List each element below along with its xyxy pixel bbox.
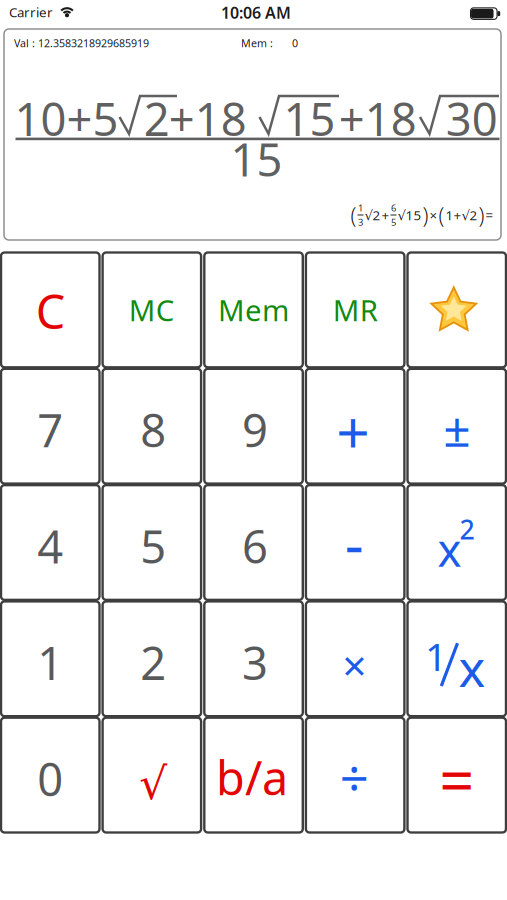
button[interactable] — [407, 252, 506, 367]
staticText: 0 — [37, 748, 63, 809]
button[interactable]: 9 — [204, 369, 303, 484]
staticText: 7 — [37, 400, 63, 460]
staticText: ) — [478, 201, 484, 229]
staticText: 15 — [283, 88, 335, 148]
staticText: 2 — [459, 511, 474, 547]
staticText: Mem : — [241, 36, 273, 50]
staticText: = — [485, 206, 493, 224]
staticText: b/a — [216, 746, 288, 808]
staticText: √2 — [364, 206, 380, 224]
staticText: MC — [129, 290, 175, 329]
staticText: 1 — [358, 202, 363, 214]
staticText: 2 — [144, 88, 170, 148]
staticText: +18 — [169, 88, 247, 148]
staticText: √ — [139, 759, 167, 809]
staticText: Carrier — [9, 3, 53, 21]
staticText: Val : 12.3583218929685919 — [14, 36, 149, 50]
staticText: 3 — [242, 632, 268, 692]
button[interactable]: ÷ — [306, 718, 404, 832]
staticText: 10+5 — [14, 88, 118, 148]
staticText: +18 — [339, 88, 417, 148]
button[interactable]: C — [1, 252, 99, 367]
staticText: ÷ — [340, 743, 369, 811]
button[interactable]: √ — [103, 718, 201, 832]
staticText: ) — [422, 201, 428, 229]
staticText: × — [342, 636, 366, 693]
button[interactable]: 5 — [103, 485, 201, 600]
button[interactable]: 1 — [407, 601, 506, 716]
staticText: x — [437, 519, 461, 579]
staticText: + — [381, 206, 389, 224]
button[interactable]: 1 — [1, 601, 99, 716]
button[interactable]: MC — [103, 252, 201, 367]
staticText: x — [459, 634, 486, 701]
staticText: 8 — [140, 400, 166, 460]
button[interactable]: 3 — [204, 601, 303, 716]
staticText: 1+√2 — [445, 206, 477, 224]
staticText: 1 — [425, 630, 447, 681]
staticText: 6 — [391, 202, 396, 214]
button[interactable]: ± — [407, 369, 506, 484]
staticText: + — [336, 393, 370, 471]
button[interactable]: 8 — [103, 369, 201, 484]
staticText: 15 — [230, 129, 282, 189]
staticText: 1 — [37, 632, 63, 692]
staticText: 4 — [37, 516, 63, 576]
staticText: - — [345, 503, 364, 581]
button[interactable]: 6 — [204, 485, 303, 600]
staticText: 10:06 AM — [221, 2, 291, 23]
staticText: ( — [350, 201, 356, 229]
button[interactable]: b/a — [204, 718, 303, 832]
staticText: MR — [333, 290, 378, 329]
staticText: 5 — [391, 216, 396, 228]
staticText: 2 — [140, 632, 166, 692]
staticText: 9 — [242, 400, 268, 460]
staticText: ± — [443, 396, 470, 460]
button[interactable]: × — [306, 601, 404, 716]
button[interactable]: Mem — [204, 252, 303, 367]
staticText: = — [439, 739, 474, 820]
staticText: √15 — [397, 206, 421, 224]
button[interactable]: 7 — [1, 369, 99, 484]
staticText: 3 — [358, 216, 363, 228]
staticText: 6 — [242, 516, 268, 576]
button[interactable]: - — [306, 485, 404, 600]
staticText: × — [429, 206, 437, 224]
staticText: ( — [438, 201, 444, 229]
staticText: C — [36, 280, 65, 342]
button[interactable]: 2 — [103, 601, 201, 716]
button[interactable]: 4 — [1, 485, 99, 600]
button[interactable]: + — [306, 369, 404, 484]
staticText: 5 — [140, 516, 166, 576]
button[interactable]: MR — [306, 252, 404, 367]
button[interactable]: 0 — [1, 718, 99, 832]
staticText: Mem — [218, 290, 289, 329]
staticText: 0 — [292, 36, 298, 50]
button[interactable]: x — [407, 485, 506, 600]
staticText: 30 — [446, 88, 498, 148]
button[interactable]: = — [407, 718, 506, 832]
